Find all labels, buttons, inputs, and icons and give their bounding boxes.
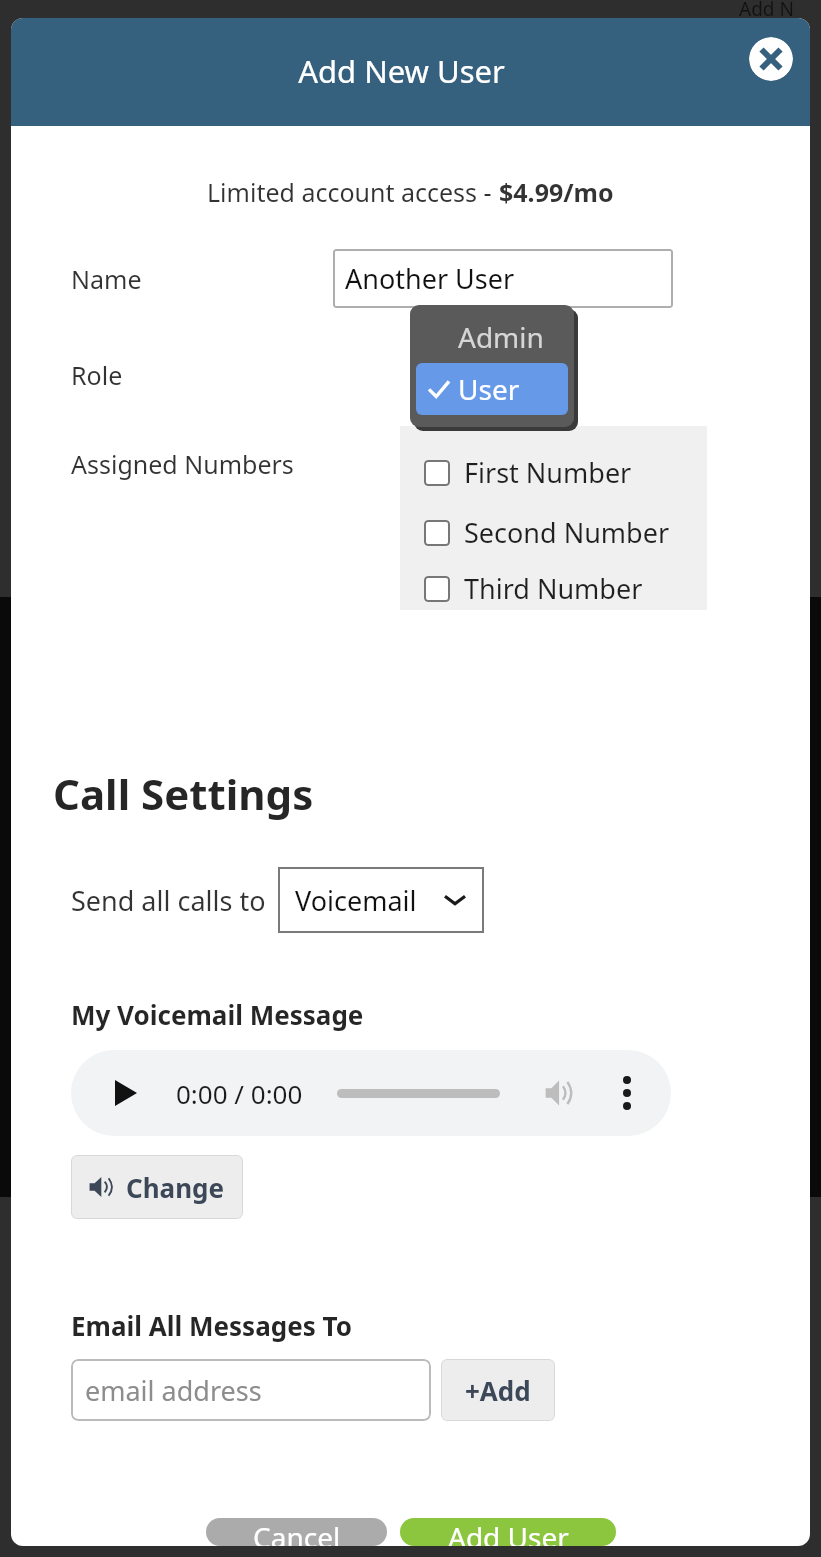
- button[interactable]: Voicemail: [278, 867, 484, 933]
- staticText: Add N: [739, 0, 794, 22]
- staticText: Admin: [458, 318, 544, 356]
- staticText: Change: [126, 1170, 225, 1205]
- staticText: Call Settings: [53, 765, 314, 822]
- staticText: Limited account access -: [207, 175, 499, 209]
- staticText: Send all calls to: [71, 882, 266, 919]
- staticText: My Voicemail Message: [71, 997, 364, 1032]
- button[interactable]: First Number: [424, 447, 632, 498]
- staticText: $4.99/mo: [499, 175, 614, 209]
- button[interactable]: Another User: [333, 249, 673, 308]
- staticText: Role: [71, 358, 123, 392]
- button[interactable]: Mute: [539, 1071, 583, 1115]
- staticText: Email All Messages To: [71, 1308, 352, 1343]
- button[interactable]: Third Number: [424, 567, 643, 610]
- button[interactable]: Change: [71, 1155, 243, 1219]
- staticText: Add User: [448, 1518, 569, 1546]
- button[interactable]: User: [416, 363, 568, 415]
- button[interactable]: email address: [71, 1359, 431, 1421]
- staticText: User: [458, 370, 520, 408]
- staticText: Add New User: [298, 50, 505, 92]
- button[interactable]: Play: [109, 1076, 143, 1110]
- staticText: Assigned Numbers: [71, 447, 294, 481]
- button[interactable]: More options: [607, 1073, 647, 1113]
- button[interactable]: Admin: [416, 313, 568, 361]
- staticText: email address: [85, 1372, 262, 1409]
- button[interactable]: Add User: [400, 1518, 616, 1546]
- staticText: First Number: [464, 454, 632, 491]
- staticText: 0:00 / 0:00: [176, 1076, 303, 1111]
- staticText: Cancel: [253, 1518, 341, 1546]
- button[interactable]: Second Number: [424, 507, 670, 558]
- button[interactable]: Close: [749, 37, 793, 81]
- button[interactable]: +Add: [441, 1359, 555, 1421]
- staticText: Another User: [345, 260, 515, 297]
- staticText: Second Number: [464, 514, 670, 551]
- staticText: Third Number: [464, 570, 643, 607]
- staticText: +Add: [465, 1373, 531, 1408]
- button[interactable]: Play: [71, 1050, 671, 1136]
- staticText: Name: [71, 262, 142, 296]
- staticText: Voicemail: [295, 882, 417, 919]
- button[interactable]: Cancel: [206, 1518, 387, 1546]
